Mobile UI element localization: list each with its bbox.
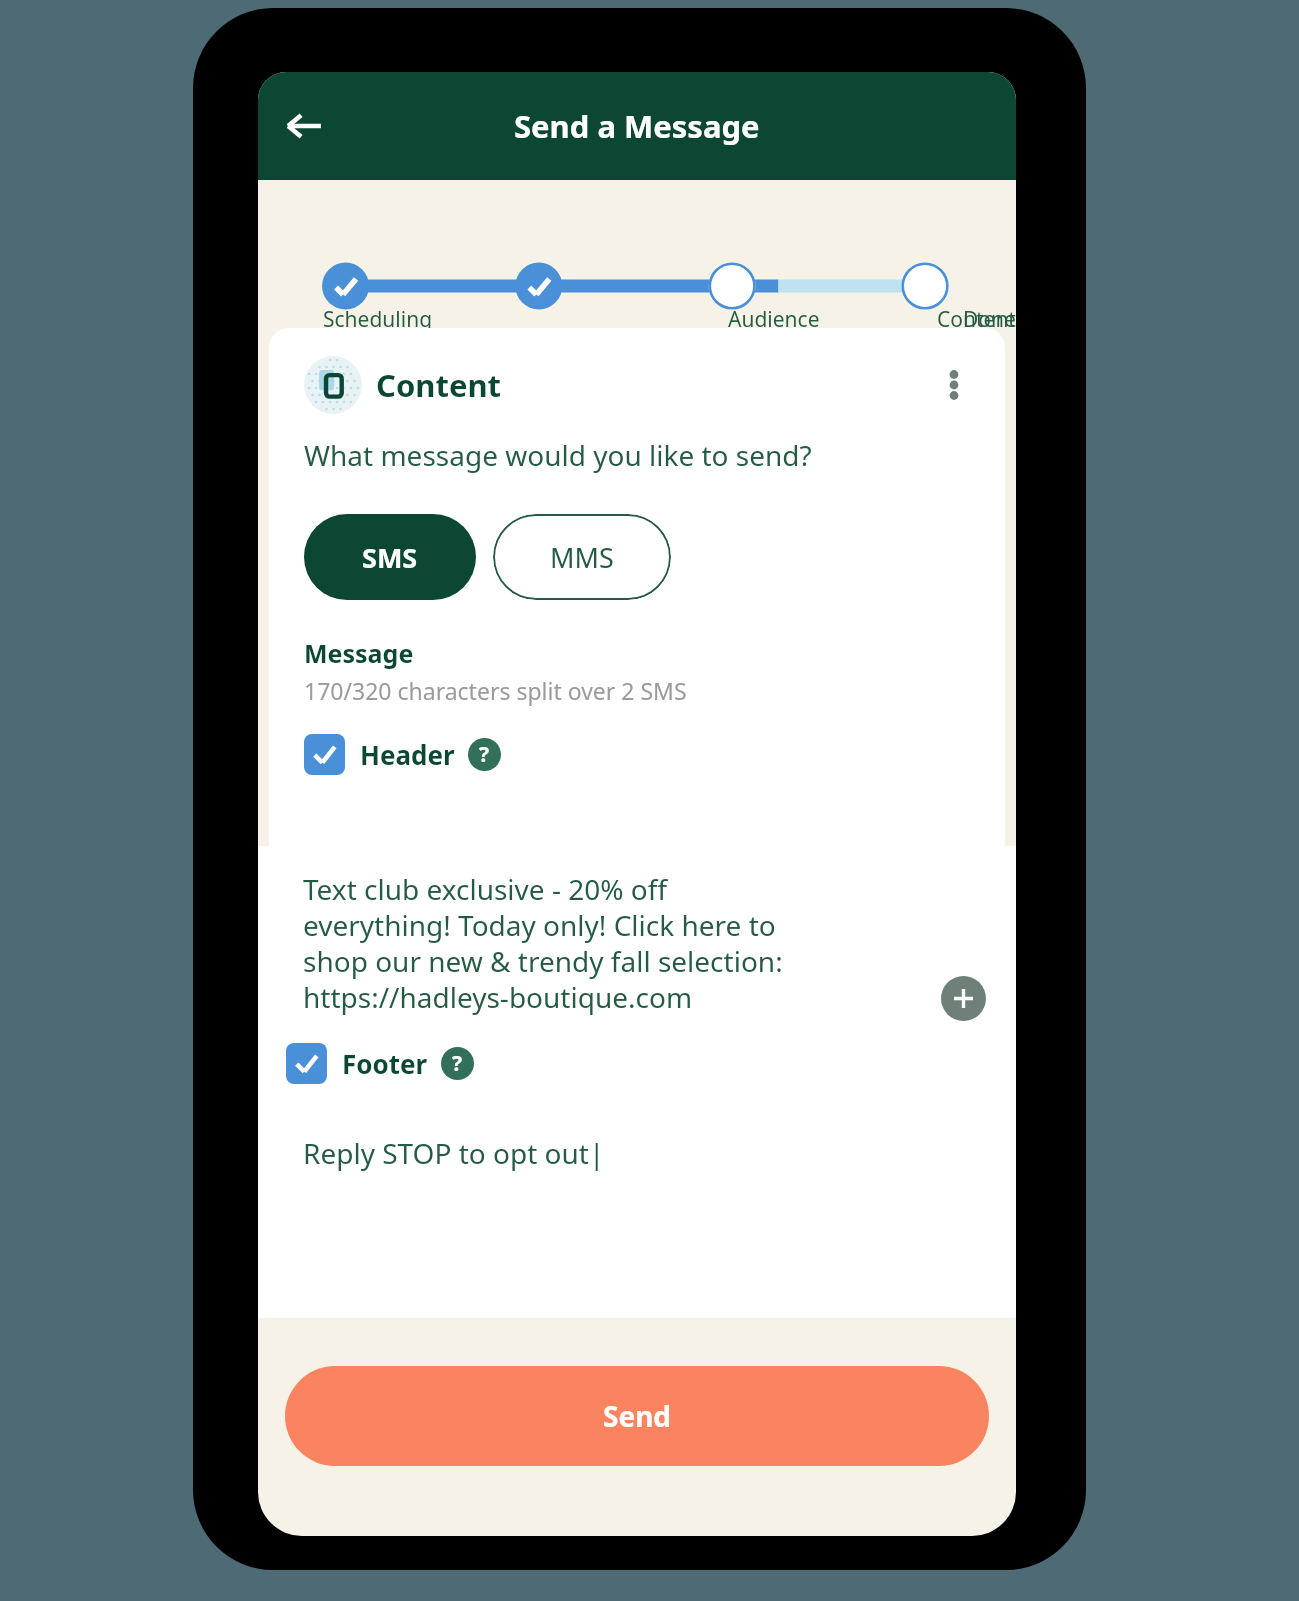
- button[interactable]: Help: [468, 738, 501, 771]
- staticText: Content: [376, 364, 501, 406]
- staticText: Content: [937, 305, 1016, 328]
- button[interactable]: Back: [274, 96, 334, 156]
- button[interactable]: More options: [929, 360, 979, 410]
- staticText: SMS: [362, 539, 418, 576]
- staticText: Header: [360, 737, 455, 772]
- button[interactable]: Help: [441, 1047, 474, 1080]
- button[interactable]: Header: [304, 734, 501, 775]
- staticText: What message would you like to send?: [304, 436, 812, 474]
- staticText: ?: [452, 1049, 463, 1078]
- staticText: Scheduling: [323, 305, 433, 328]
- button[interactable]: MMS: [493, 514, 671, 600]
- staticText: MMS: [550, 539, 614, 576]
- button[interactable]: Footer: [286, 1043, 474, 1084]
- staticText: Text club exclusive - 20% off everything…: [303, 870, 808, 1016]
- button[interactable]: SMS: [304, 514, 476, 600]
- staticText: Done: [963, 305, 1016, 328]
- staticText: Send a Message: [514, 105, 760, 147]
- staticText: Footer: [342, 1046, 428, 1081]
- staticText: ?: [479, 740, 490, 769]
- staticText: 170/320 characters split over 2 SMS: [304, 675, 687, 706]
- staticText: Message: [304, 636, 414, 670]
- staticText: Audience: [728, 305, 820, 328]
- button[interactable]: Send: [285, 1366, 989, 1466]
- staticText: Send: [603, 1397, 672, 1435]
- button[interactable]: Add: [941, 976, 986, 1021]
- staticText: Reply STOP to opt out|: [303, 1134, 605, 1172]
